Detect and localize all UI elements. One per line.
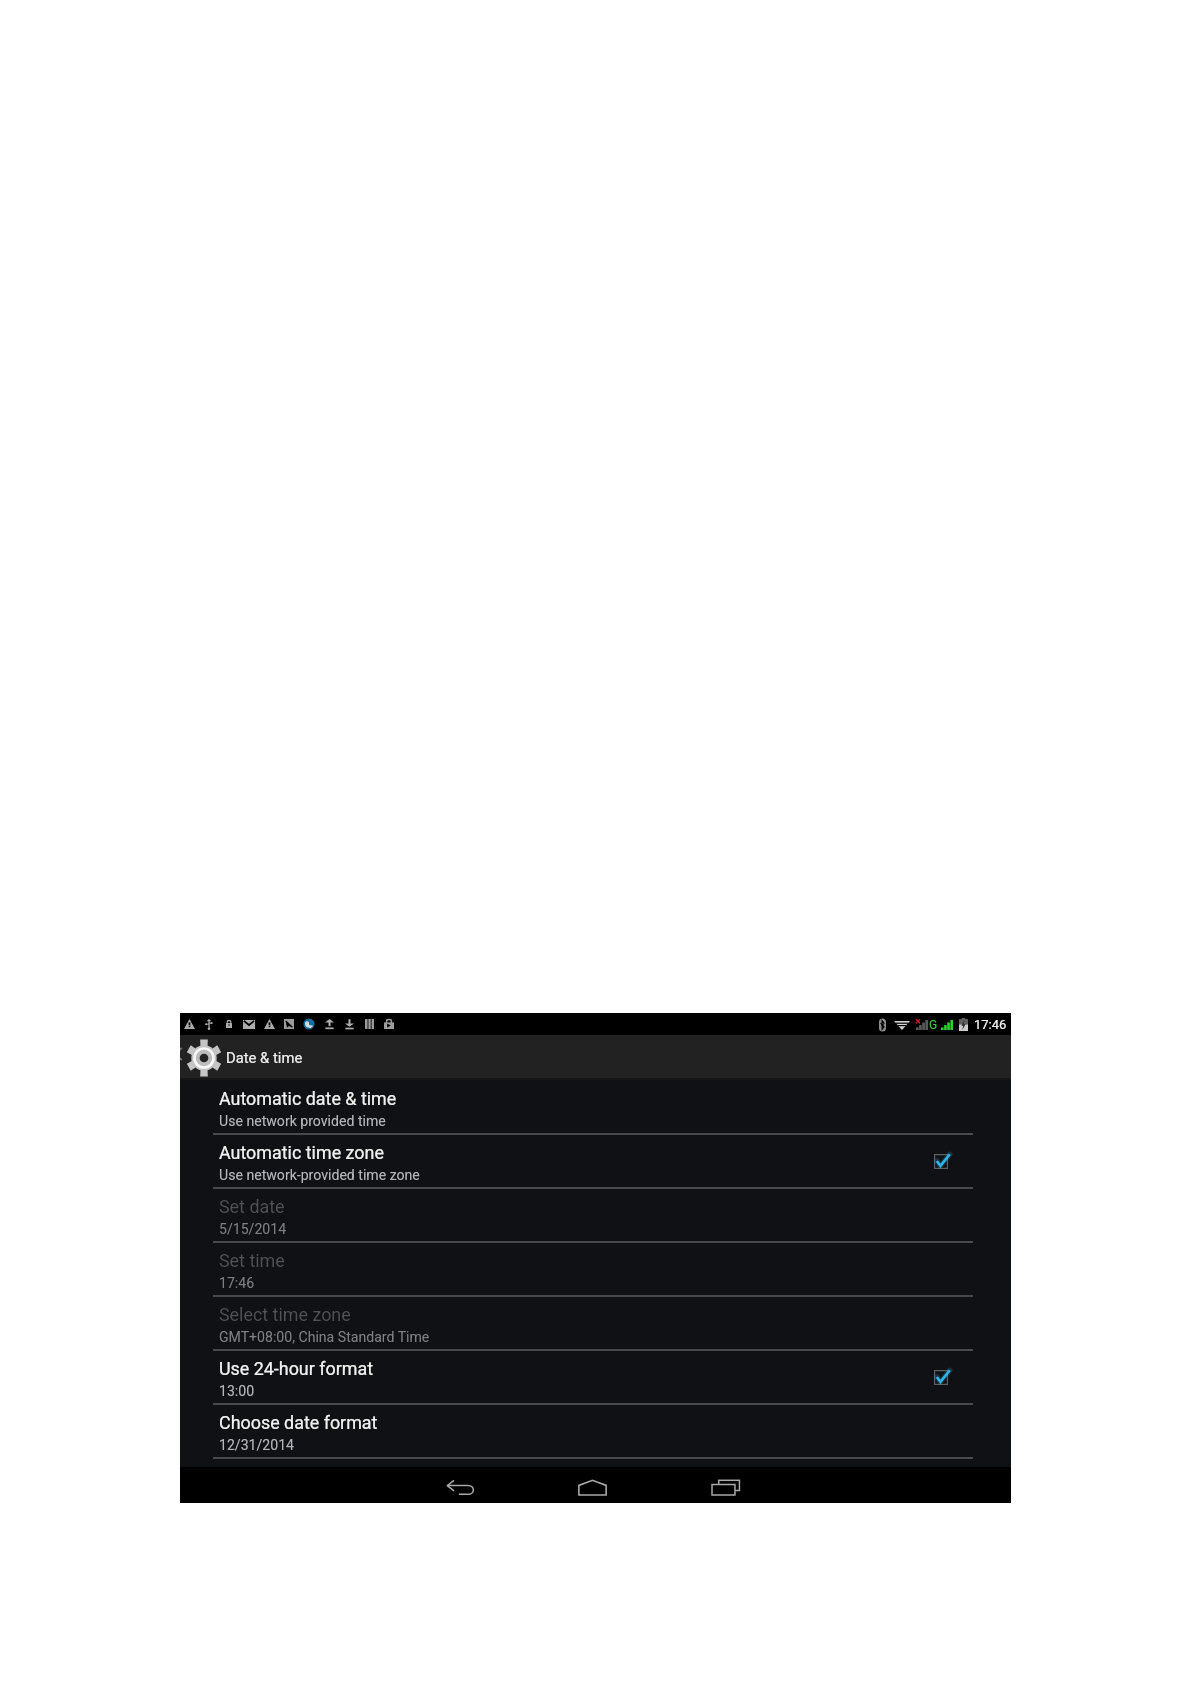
button[interactable]: Set time	[180, 1242, 1011, 1296]
staticText: Select time zone	[219, 1304, 351, 1325]
staticText: Date & time	[226, 1049, 303, 1066]
button[interactable]: Select time zone	[180, 1296, 1011, 1350]
staticText: Use network provided time	[219, 1113, 386, 1130]
staticText: Use 24-hour format	[219, 1358, 373, 1379]
staticText: GMT+08:00, China Standard Time	[219, 1329, 430, 1346]
staticText: 12/31/2014	[219, 1437, 294, 1454]
staticText: 17:46	[219, 1275, 255, 1292]
button[interactable]: Date & time	[180, 1035, 340, 1080]
staticText: Automatic time zone	[219, 1142, 384, 1163]
button[interactable]: Recent apps	[692, 1467, 760, 1503]
staticText: 13:00	[219, 1383, 255, 1400]
staticText: G	[929, 1018, 938, 1032]
staticText: 5/15/2014	[219, 1221, 287, 1238]
button[interactable]: Back	[426, 1467, 494, 1503]
button[interactable]: Automatic date & time	[180, 1080, 1011, 1134]
staticText: Use network-provided time zone	[219, 1167, 420, 1184]
staticText: Automatic date & time	[219, 1088, 397, 1109]
button[interactable]: Automatic time zone	[180, 1134, 1011, 1188]
staticText: Set date	[219, 1196, 285, 1217]
button[interactable]: Use 24-hour format	[180, 1350, 1011, 1404]
button[interactable]: Set date	[180, 1188, 1011, 1242]
staticText: Set time	[219, 1250, 285, 1271]
staticText: 17:46	[974, 1017, 1007, 1032]
button[interactable]: Choose date format	[180, 1404, 1011, 1458]
button[interactable]: Home	[558, 1467, 626, 1503]
staticText: Choose date format	[219, 1412, 378, 1433]
